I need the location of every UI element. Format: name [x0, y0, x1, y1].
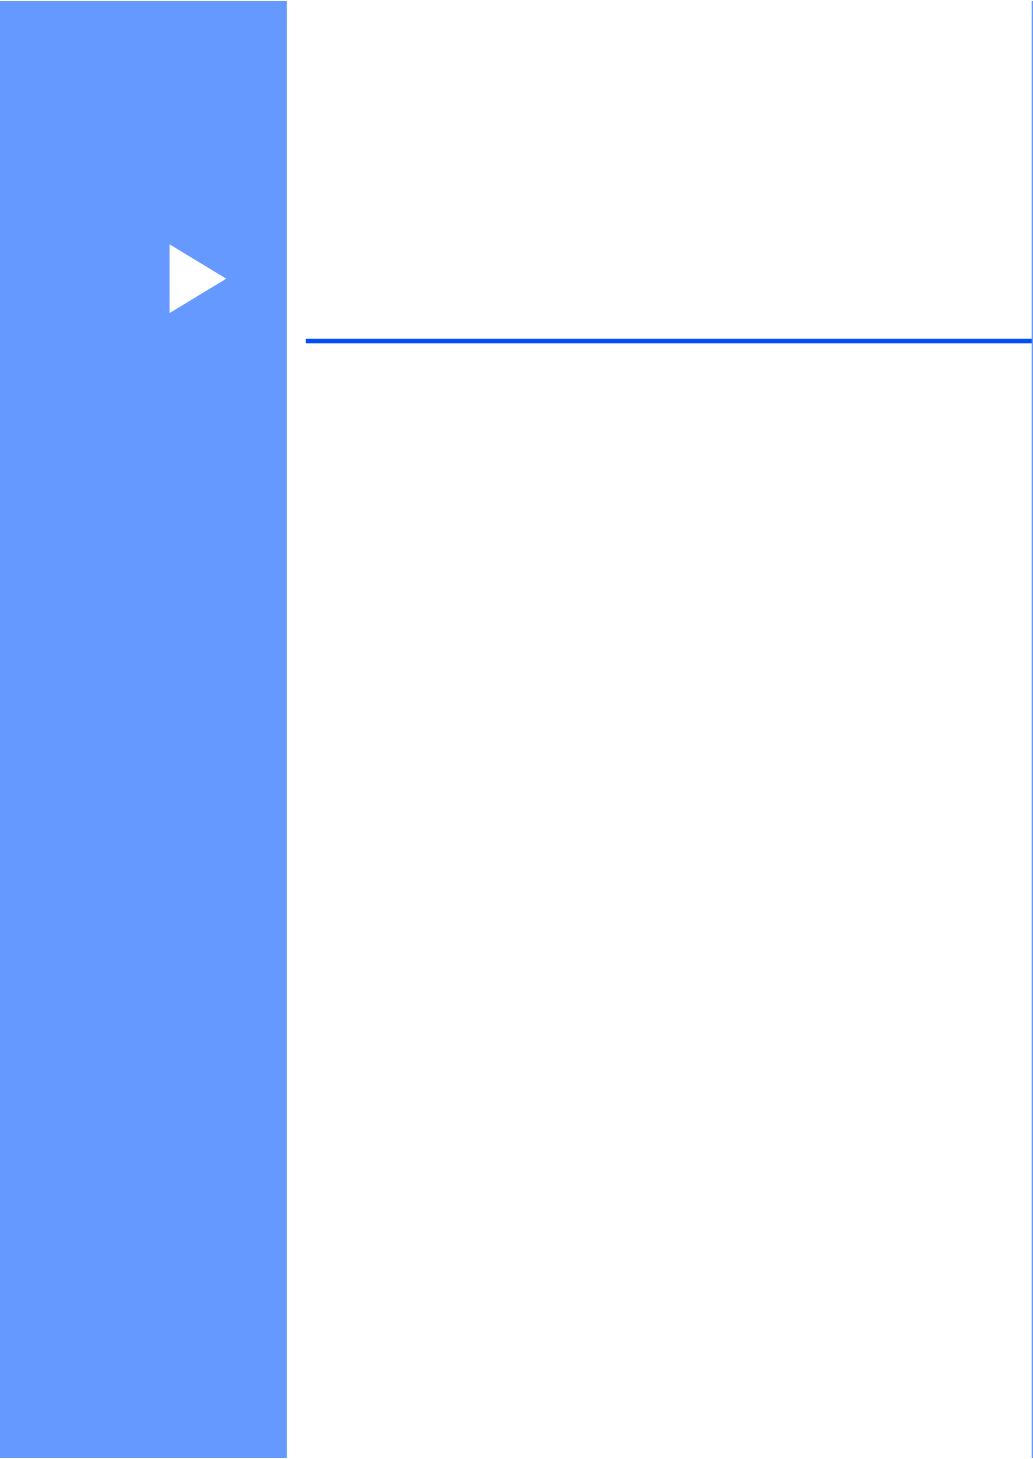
button[interactable]: Play	[170, 244, 226, 313]
